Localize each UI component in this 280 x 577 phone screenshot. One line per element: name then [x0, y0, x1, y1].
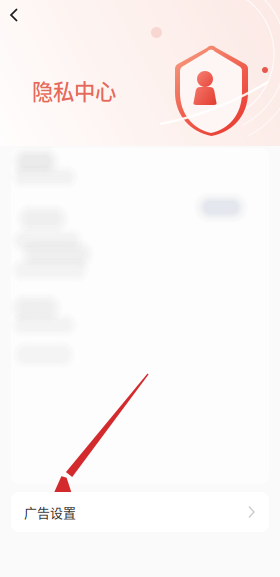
staticText: 广告设置 — [24, 503, 76, 521]
staticText: 隐私中心 — [32, 75, 116, 106]
button[interactable]: Back — [4, 3, 30, 29]
button[interactable]: 广告设置 — [11, 492, 269, 532]
